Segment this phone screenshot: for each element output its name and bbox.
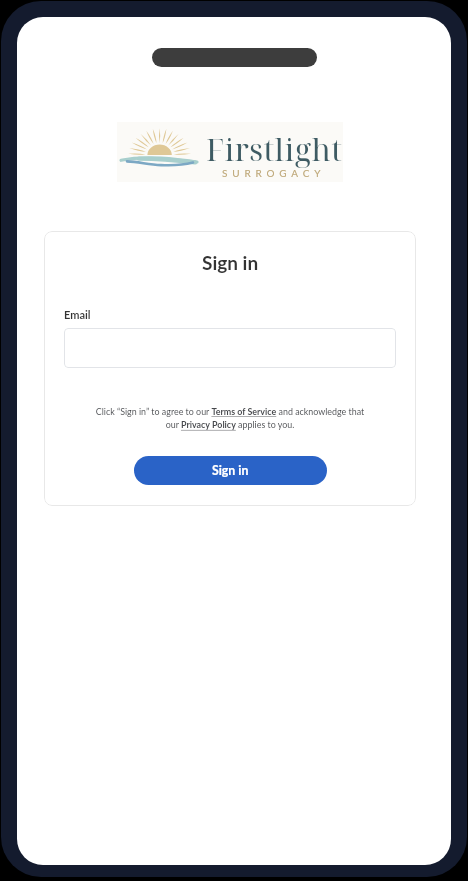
staticText: Sign in [202,251,259,274]
button[interactable] [64,328,396,368]
staticText: Click “Sign in” to agree to our Terms of… [94,406,366,430]
staticText: Firstlight [206,128,343,170]
button[interactable]: Sign in [134,456,327,485]
staticText: Sign in [212,463,249,478]
staticText: Email [64,308,91,321]
staticText: SURROGACY [222,167,326,179]
